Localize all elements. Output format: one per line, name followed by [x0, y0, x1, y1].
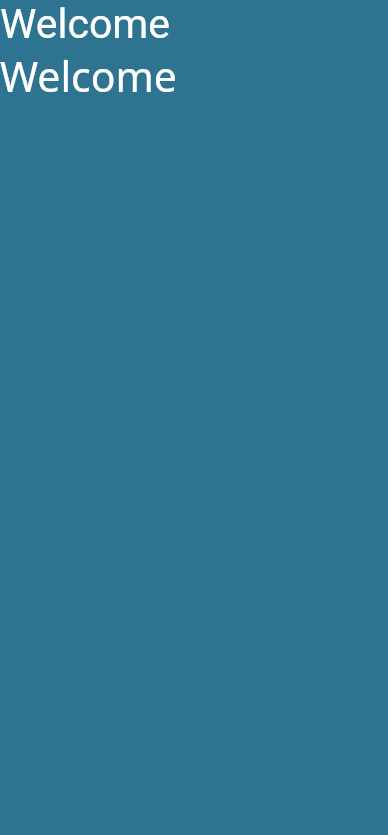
staticText: Welcome [0, 0, 171, 48]
staticText: Welcome [0, 48, 177, 104]
